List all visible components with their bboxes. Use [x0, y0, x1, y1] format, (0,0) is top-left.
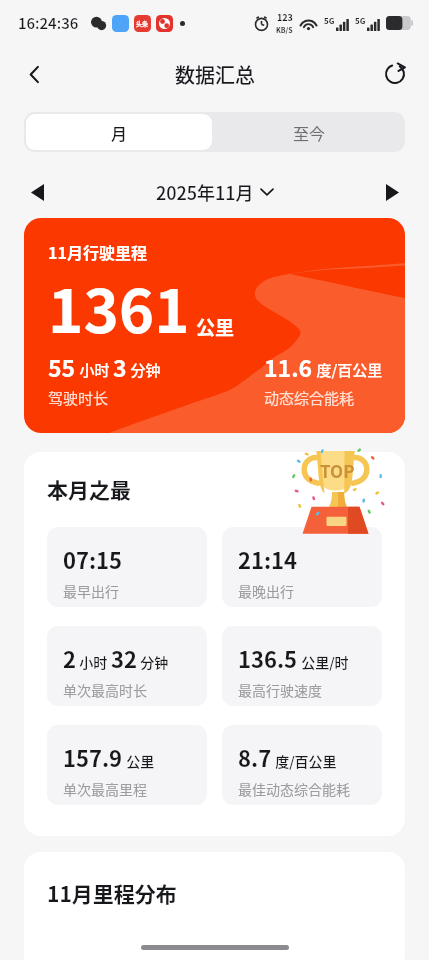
button[interactable]: Back [16, 56, 52, 92]
staticText: 11月里程分布 [47, 878, 177, 908]
staticText: 32 [111, 642, 137, 674]
staticText: 11.6 [264, 350, 313, 383]
staticText: 5G [324, 15, 335, 27]
staticText: 公里 [196, 313, 235, 341]
button[interactable]: Previous month [22, 177, 52, 207]
staticText: 最高行驶速度 [238, 680, 322, 700]
staticText: 小时 [76, 359, 113, 381]
staticText: 公里 [123, 751, 155, 771]
staticText: 157.9 [63, 741, 123, 773]
staticText: 度/百公里 [272, 751, 337, 771]
button[interactable]: 07:15 [47, 527, 207, 607]
staticText: 5G [355, 15, 366, 27]
button[interactable]: 2025年11月 [156, 179, 273, 205]
staticText: 动态综合能耗 [264, 387, 355, 409]
staticText: 3 [113, 350, 127, 383]
staticText: 至今 [293, 121, 326, 144]
staticText: 136.5 [238, 642, 298, 674]
staticText: 8.7 [238, 741, 272, 773]
staticText: 公里/时 [298, 652, 349, 672]
button[interactable]: 月 [26, 114, 212, 150]
staticText: 单次最高时长 [63, 680, 147, 700]
staticText: 2025年11月 [156, 179, 254, 205]
button[interactable]: 8.7 [222, 725, 382, 805]
staticText: 最佳动态综合能耗 [238, 779, 350, 799]
staticText: 数据汇总 [175, 60, 255, 89]
staticText: 123 [277, 11, 293, 24]
button[interactable]: 至今 [214, 112, 405, 152]
button[interactable]: 11月行驶里程 [24, 218, 405, 433]
staticText: 11月行驶里程 [48, 240, 147, 263]
button[interactable]: 21:14 [222, 527, 382, 607]
staticText: 本月之最 [47, 474, 131, 504]
staticText: 度/百公里 [313, 359, 383, 381]
staticText: 驾驶时长 [48, 387, 109, 409]
staticText: 1361 [48, 263, 190, 350]
staticText: 07:15 [63, 543, 123, 575]
staticText: TOP [320, 458, 355, 483]
staticText: 头条 [136, 19, 149, 28]
staticText: 月 [111, 121, 128, 144]
button[interactable]: 157.9 [47, 725, 207, 805]
staticText: 分钟 [127, 359, 161, 381]
button[interactable]: 2 [47, 626, 207, 706]
button[interactable]: Refresh [377, 56, 413, 92]
button[interactable]: 136.5 [222, 626, 382, 706]
staticText: 小时 [76, 652, 111, 672]
staticText: 2 [63, 642, 76, 674]
staticText: 16:24:36 [18, 12, 79, 34]
staticText: 最晚出行 [238, 581, 294, 601]
staticText: 55 [48, 350, 76, 383]
staticText: 分钟 [137, 652, 169, 672]
button[interactable]: Next month [377, 177, 407, 207]
staticText: 21:14 [238, 543, 298, 575]
staticText: KB/S [276, 25, 293, 35]
staticText: 最早出行 [63, 581, 119, 601]
staticText: 单次最高里程 [63, 779, 147, 799]
